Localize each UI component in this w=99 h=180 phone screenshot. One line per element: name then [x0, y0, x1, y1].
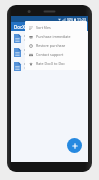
button[interactable]: [11, 59, 88, 73]
button[interactable]: [11, 45, 88, 59]
staticText: Rate DocX to Doc: [36, 61, 66, 66]
button[interactable]: Contact support: [25, 50, 87, 59]
button[interactable]: Restore purchase: [25, 41, 87, 50]
staticText: Contact support: [36, 52, 64, 57]
staticText: 92%: [67, 18, 73, 22]
button[interactable]: [11, 31, 88, 45]
staticText: Purchase immediate conversions: [36, 34, 85, 39]
button[interactable]: Rate DocX to Doc: [25, 59, 87, 68]
button[interactable]: Add file: [67, 138, 82, 153]
button[interactable]: Purchase immediate conversions: [25, 32, 87, 41]
button[interactable]: Sort files: [25, 23, 87, 32]
staticText: Restore purchase: [36, 43, 66, 48]
staticText: DocX to Doc: [14, 24, 41, 30]
staticText: Sort files: [36, 25, 51, 30]
staticText: 11:23: [77, 17, 86, 22]
